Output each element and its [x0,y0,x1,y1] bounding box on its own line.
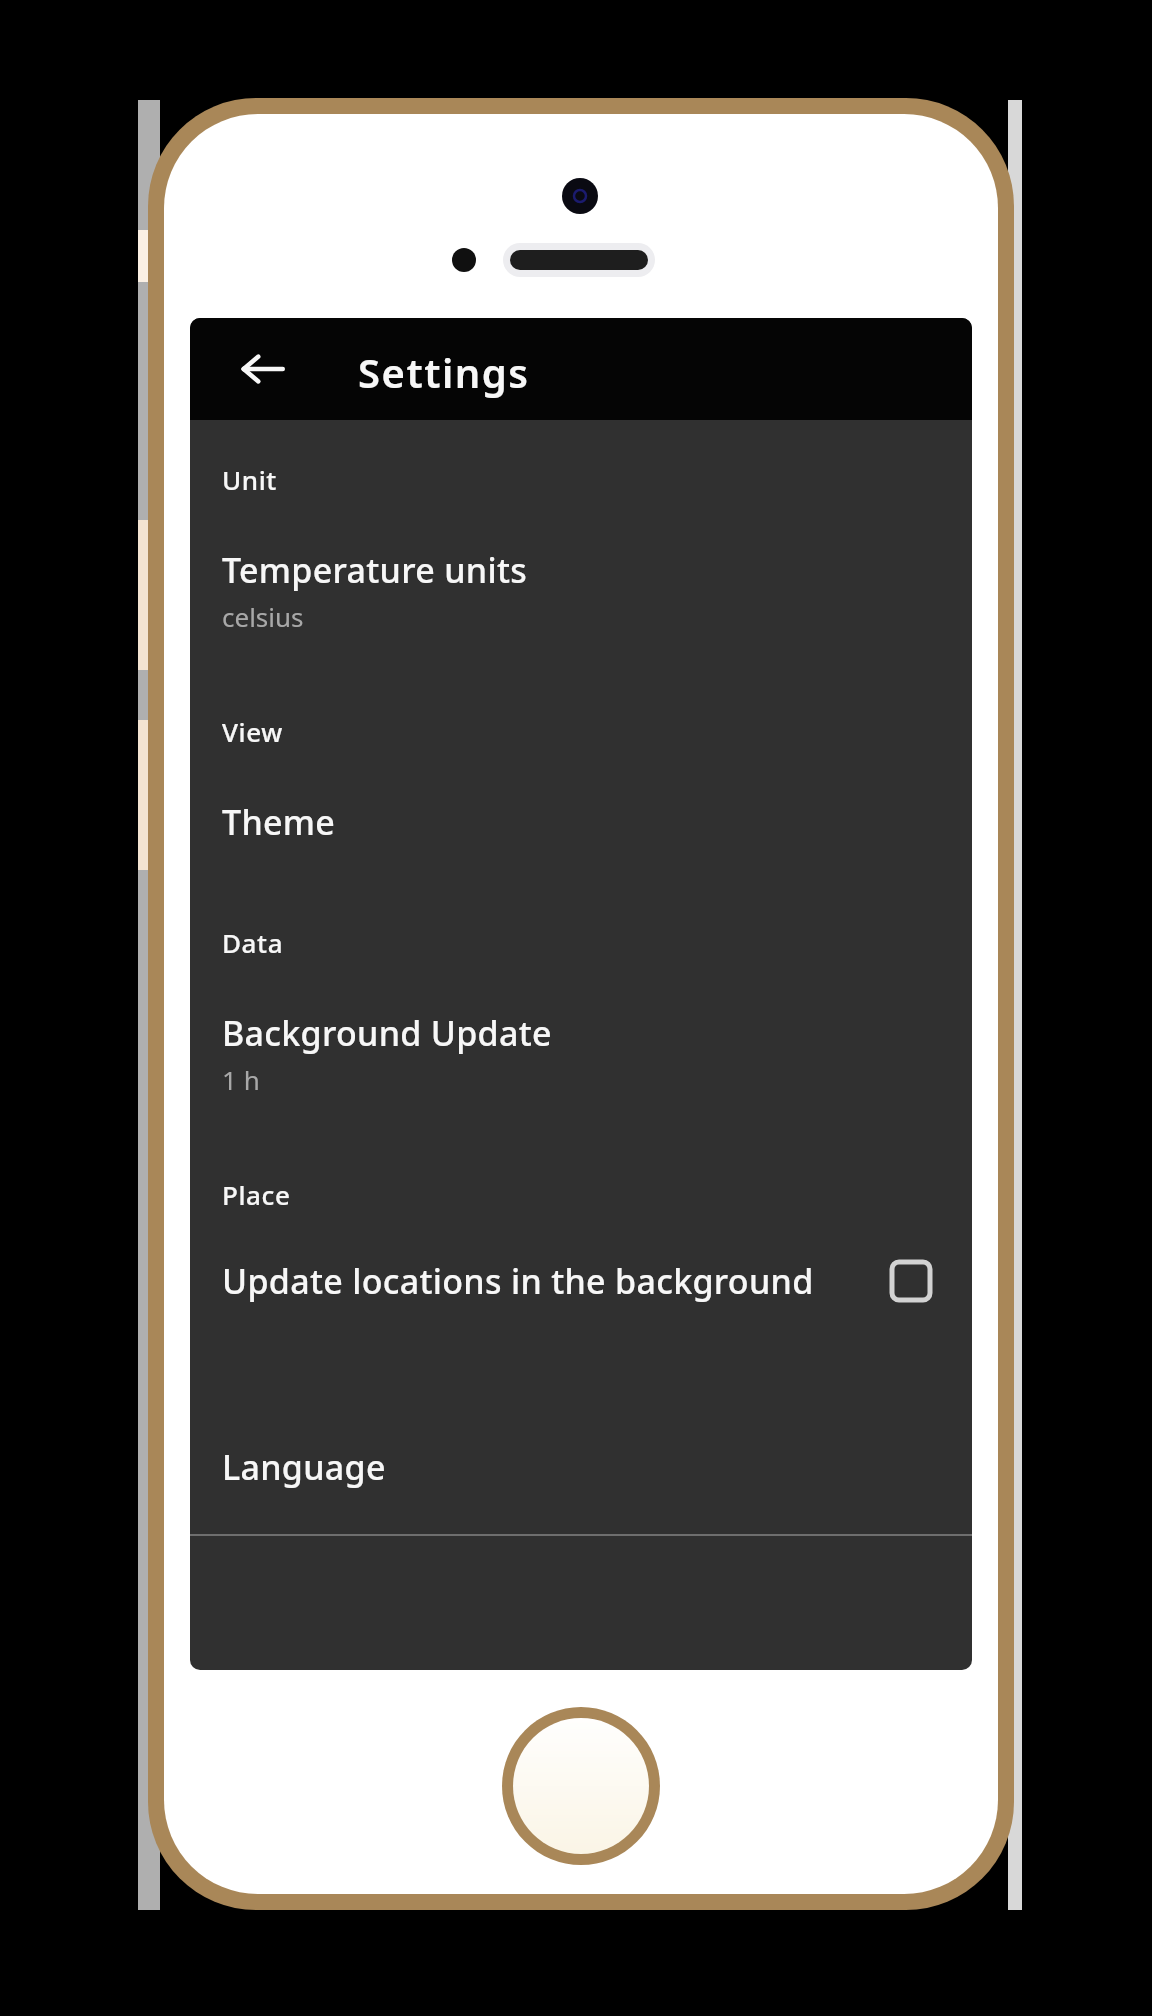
button[interactable]: Language [190,1440,972,1498]
staticText: Language [222,1444,386,1490]
button[interactable]: Temperature units [190,543,972,642]
button[interactable]: Back [230,336,296,402]
staticText: Temperature units [222,547,528,593]
staticText: Unit [222,462,277,497]
button[interactable]: Update locations in the background [190,1254,972,1312]
button[interactable]: Background Update [190,1006,972,1105]
staticText: Update locations in the background [222,1258,890,1304]
staticText: Theme [222,799,336,845]
button[interactable]: Theme [190,795,972,853]
staticText: Background Update [222,1010,552,1056]
staticText: Data [222,925,284,960]
staticText: Settings [358,345,530,399]
staticText: 1 h [222,1062,260,1097]
staticText: celsius [222,599,304,634]
staticText: Place [222,1177,291,1212]
staticText: View [222,714,283,749]
